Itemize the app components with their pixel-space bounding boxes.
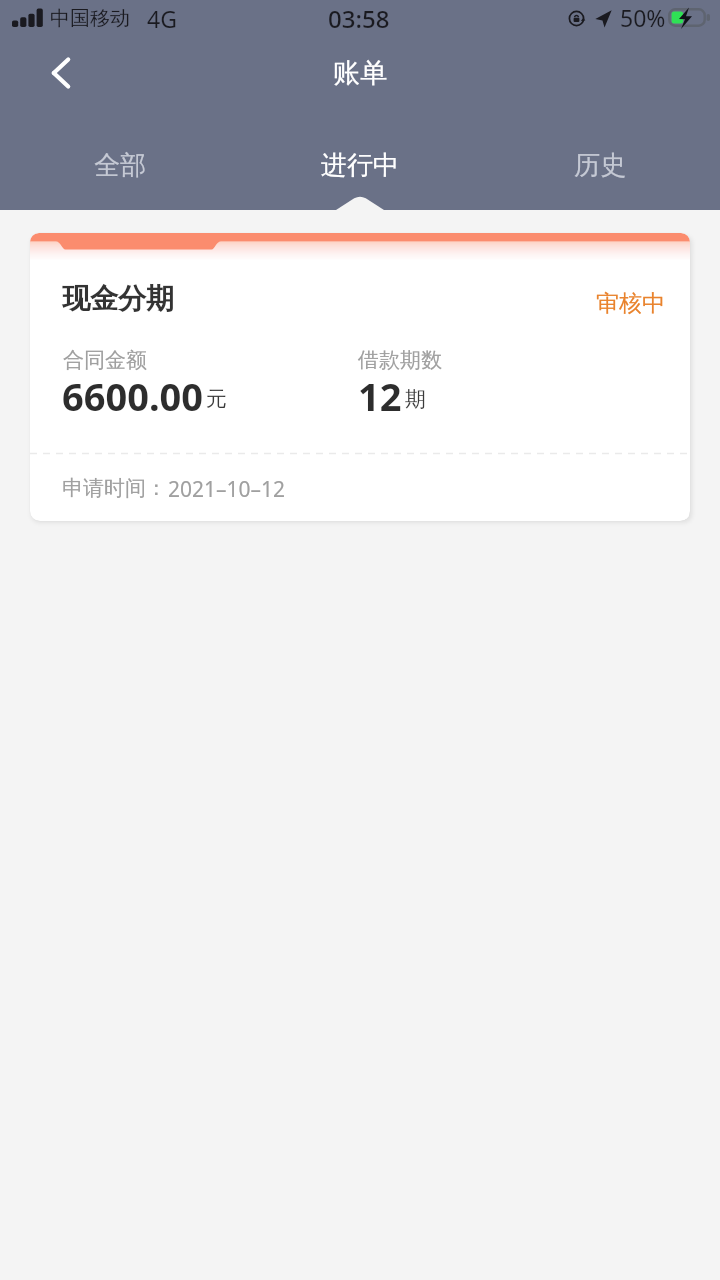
- staticText: 03:58: [328, 2, 390, 35]
- staticText: 借款期数: [358, 347, 442, 373]
- staticText: 审核中: [596, 289, 665, 318]
- button[interactable]: 历史: [480, 133, 720, 197]
- staticText: 50%: [620, 2, 666, 33]
- staticText: 历史: [574, 149, 626, 182]
- button[interactable]: Back: [34, 46, 88, 100]
- staticText: 账单: [333, 56, 387, 90]
- staticText: 申请时间：: [62, 475, 167, 501]
- staticText: 12: [358, 370, 402, 422]
- staticText: 4G: [147, 3, 177, 34]
- staticText: 进行中: [321, 149, 399, 182]
- staticText: 6600.00: [62, 370, 204, 422]
- staticText: 中国移动: [50, 6, 130, 31]
- staticText: 现金分期: [62, 281, 174, 316]
- staticText: 合同金额: [63, 347, 147, 373]
- staticText: 全部: [94, 149, 146, 182]
- staticText: 2021–10–12: [168, 475, 286, 504]
- button[interactable]: 全部: [0, 133, 240, 197]
- staticText: 期: [405, 386, 426, 412]
- button[interactable]: 现金分期: [30, 233, 690, 521]
- button[interactable]: 进行中: [240, 133, 480, 197]
- staticText: 元: [206, 386, 227, 412]
